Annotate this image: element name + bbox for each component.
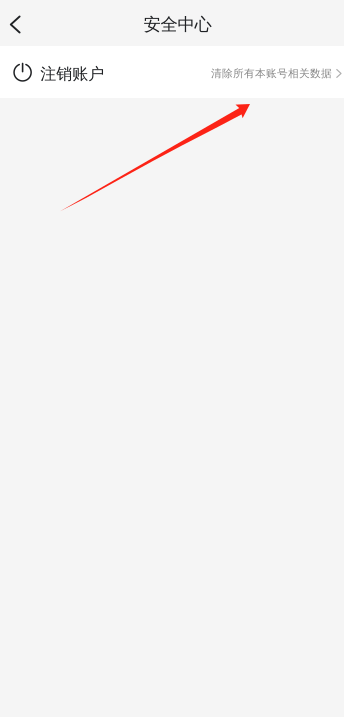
staticText: 注销账户 xyxy=(40,64,104,84)
button[interactable]: 注销账户 xyxy=(0,46,344,98)
button[interactable]: Back xyxy=(0,0,32,46)
staticText: 清除所有本账号相关数据 xyxy=(211,67,332,80)
staticText: 安全中心 xyxy=(143,14,211,35)
